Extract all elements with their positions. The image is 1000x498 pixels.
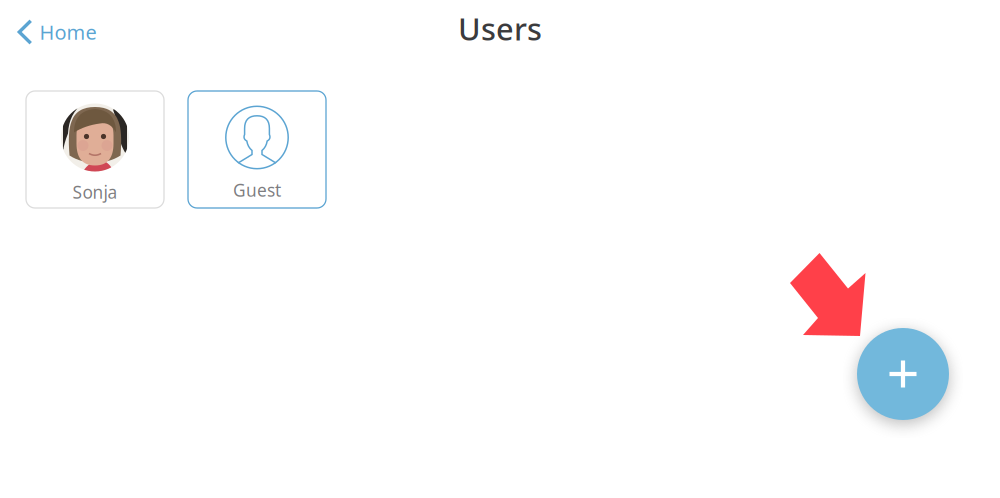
- staticText: Sonja: [72, 180, 117, 203]
- staticText: Users: [458, 8, 542, 49]
- staticText: Guest: [233, 178, 281, 201]
- button[interactable]: Guest: [188, 91, 326, 208]
- button[interactable]: Sonja: [26, 91, 164, 208]
- staticText: Home: [39, 19, 96, 45]
- button[interactable]: Add user: [857, 328, 949, 420]
- button[interactable]: Home: [13, 14, 100, 50]
